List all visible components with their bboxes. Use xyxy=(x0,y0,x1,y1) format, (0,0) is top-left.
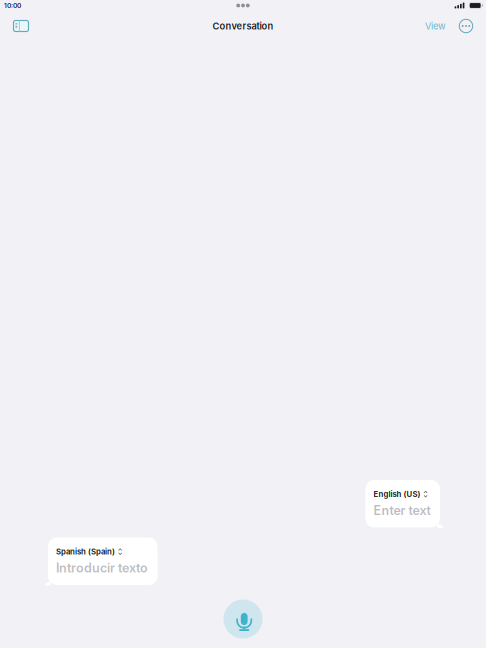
staticText: Spanish (Spain) xyxy=(56,547,115,556)
staticText: English (US) xyxy=(373,489,420,499)
button[interactable]: View xyxy=(420,13,451,39)
staticText: Conversation xyxy=(212,20,273,32)
staticText: View xyxy=(425,20,446,32)
staticText: Enter text xyxy=(373,503,430,518)
staticText: Introducir texto xyxy=(56,560,148,575)
button[interactable]: Show sidebar xyxy=(4,13,36,39)
staticText: 10:00 xyxy=(4,1,21,10)
button[interactable]: More options xyxy=(451,13,481,39)
button[interactable]: Record xyxy=(221,597,265,641)
button[interactable]: Spanish (Spain) xyxy=(48,537,158,585)
button[interactable]: English (US) xyxy=(365,480,440,527)
